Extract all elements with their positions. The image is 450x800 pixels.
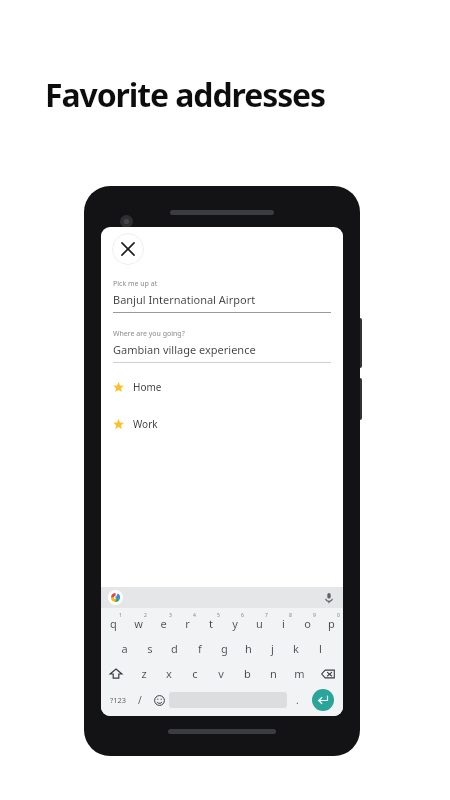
button[interactable]: Pick me up at — [113, 279, 331, 313]
button[interactable]: i — [271, 611, 295, 636]
staticText: 8 — [289, 612, 292, 619]
staticText: 1 — [119, 612, 122, 619]
staticText: x — [166, 666, 172, 681]
button[interactable]: r — [175, 611, 199, 636]
staticText: 6 — [241, 612, 244, 619]
staticText: o — [304, 616, 311, 631]
staticText: y — [232, 616, 238, 631]
button[interactable]: Where are you going? — [113, 329, 331, 363]
button[interactable]: Emoji — [149, 686, 169, 714]
button[interactable]: p — [319, 611, 343, 636]
staticText: 9 — [313, 612, 316, 619]
staticText: q — [110, 616, 117, 631]
staticText: d — [171, 641, 178, 656]
staticText: 3 — [169, 612, 172, 619]
staticText: ?123 — [110, 695, 127, 705]
button[interactable]: o — [295, 611, 319, 636]
staticText: Home — [133, 380, 162, 394]
staticText: 5 — [217, 612, 220, 619]
button[interactable]: f — [187, 636, 212, 661]
staticText: r — [185, 616, 190, 631]
staticText: f — [198, 641, 202, 656]
staticText: k — [293, 641, 299, 656]
button[interactable]: b — [234, 661, 260, 686]
button[interactable]: Shift — [101, 661, 131, 686]
button[interactable]: c — [182, 661, 208, 686]
staticText: p — [328, 616, 335, 631]
button[interactable]: j — [260, 636, 284, 661]
staticText: Where are you going? — [113, 329, 185, 339]
button[interactable]: ?123 — [105, 686, 131, 714]
staticText: 0 — [337, 612, 340, 619]
button[interactable]: a — [112, 636, 137, 661]
button[interactable]: Close — [112, 233, 144, 265]
staticText: s — [147, 641, 153, 656]
staticText: u — [256, 616, 263, 631]
staticText: b — [244, 666, 251, 681]
staticText: Banjul International Airport — [113, 292, 256, 307]
button[interactable]: z — [131, 661, 156, 686]
button[interactable]: u — [247, 611, 271, 636]
staticText: Favorite addresses — [45, 73, 326, 117]
staticText: z — [141, 666, 147, 681]
button[interactable]: v — [208, 661, 234, 686]
button[interactable]: y — [223, 611, 247, 636]
staticText: e — [160, 616, 167, 631]
staticText: g — [221, 641, 228, 656]
staticText: Work — [133, 417, 158, 431]
button[interactable]: q — [101, 611, 126, 636]
button[interactable]: l — [308, 636, 332, 661]
button[interactable]: w — [126, 611, 151, 636]
button[interactable]: e — [151, 611, 175, 636]
button[interactable]: Enter — [312, 689, 334, 711]
staticText: h — [245, 641, 252, 656]
button[interactable]: t — [199, 611, 223, 636]
button[interactable]: s — [137, 636, 162, 661]
staticText: m — [294, 666, 305, 681]
staticText: v — [218, 666, 224, 681]
button[interactable]: k — [284, 636, 308, 661]
staticText: c — [192, 666, 198, 681]
staticText: 2 — [144, 612, 147, 619]
button[interactable]: Google — [108, 590, 123, 605]
staticText: n — [270, 666, 277, 681]
staticText: Gambian village experience — [113, 342, 256, 357]
staticText: j — [271, 641, 274, 656]
button[interactable]: Backspace — [312, 661, 343, 686]
staticText: t — [209, 616, 213, 631]
button[interactable]: Home — [113, 380, 331, 394]
button[interactable]: h — [236, 636, 260, 661]
button[interactable]: . — [287, 686, 307, 714]
button[interactable]: g — [212, 636, 236, 661]
staticText: 7 — [265, 612, 268, 619]
staticText: / — [138, 693, 142, 707]
button[interactable]: / — [131, 686, 149, 714]
button[interactable]: Voice input — [322, 591, 336, 605]
staticText: l — [319, 641, 322, 656]
staticText: a — [121, 641, 128, 656]
button[interactable]: x — [156, 661, 182, 686]
staticText: 4 — [193, 612, 196, 619]
button[interactable]: m — [286, 661, 312, 686]
button[interactable]: n — [260, 661, 286, 686]
staticText: w — [134, 616, 143, 631]
staticText: . — [296, 693, 299, 707]
button[interactable]: Work — [113, 417, 331, 431]
staticText: Pick me up at — [113, 279, 158, 289]
staticText: i — [282, 616, 285, 631]
button[interactable]: d — [162, 636, 187, 661]
